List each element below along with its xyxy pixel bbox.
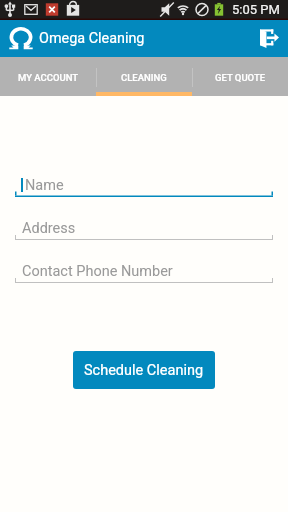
staticText: GET QUOTE xyxy=(215,72,266,83)
staticText: Schedule Cleaning xyxy=(84,362,204,379)
staticText: 5:05 PM xyxy=(232,2,280,17)
staticText: Name xyxy=(25,177,64,194)
button[interactable]: Name xyxy=(15,173,273,197)
staticText: MY ACCOUNT xyxy=(18,72,79,83)
button[interactable]: GET QUOTE xyxy=(192,57,288,96)
staticText: CLEANING xyxy=(121,72,167,83)
button[interactable]: Address xyxy=(15,216,273,240)
staticText: Address xyxy=(22,220,76,237)
button[interactable]: Log out xyxy=(250,20,288,57)
staticText: Omega Cleaning xyxy=(39,30,145,47)
staticText: Contact Phone Number xyxy=(22,263,173,280)
button[interactable]: Contact Phone Number xyxy=(15,259,273,283)
button[interactable]: Schedule Cleaning xyxy=(73,351,215,389)
button[interactable]: MY ACCOUNT xyxy=(0,57,96,96)
button[interactable]: CLEANING xyxy=(96,57,192,96)
